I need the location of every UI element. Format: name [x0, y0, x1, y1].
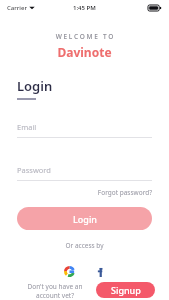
staticText: Email [17, 122, 37, 132]
staticText: Or access by [17, 241, 152, 250]
staticText: 1:45 PM [73, 4, 96, 12]
staticText: Don't you have an account yet? [14, 282, 96, 298]
button[interactable]: Signup [96, 282, 155, 298]
button[interactable]: Forgot password? [17, 188, 152, 197]
staticText: W E L C O M E T O [0, 32, 169, 41]
button[interactable]: Sign in with Facebook [89, 260, 111, 282]
button[interactable]: Password [17, 165, 152, 181]
button[interactable]: Sign in with Google [58, 260, 80, 282]
staticText: Login [73, 213, 97, 225]
button[interactable]: Email [17, 122, 152, 138]
staticText: Carrier [7, 4, 27, 12]
staticText: Signup [111, 284, 141, 296]
staticText: Login [17, 77, 53, 95]
staticText: Password [17, 165, 51, 175]
staticText: Davinote [0, 44, 169, 60]
button[interactable]: Login [17, 207, 152, 230]
